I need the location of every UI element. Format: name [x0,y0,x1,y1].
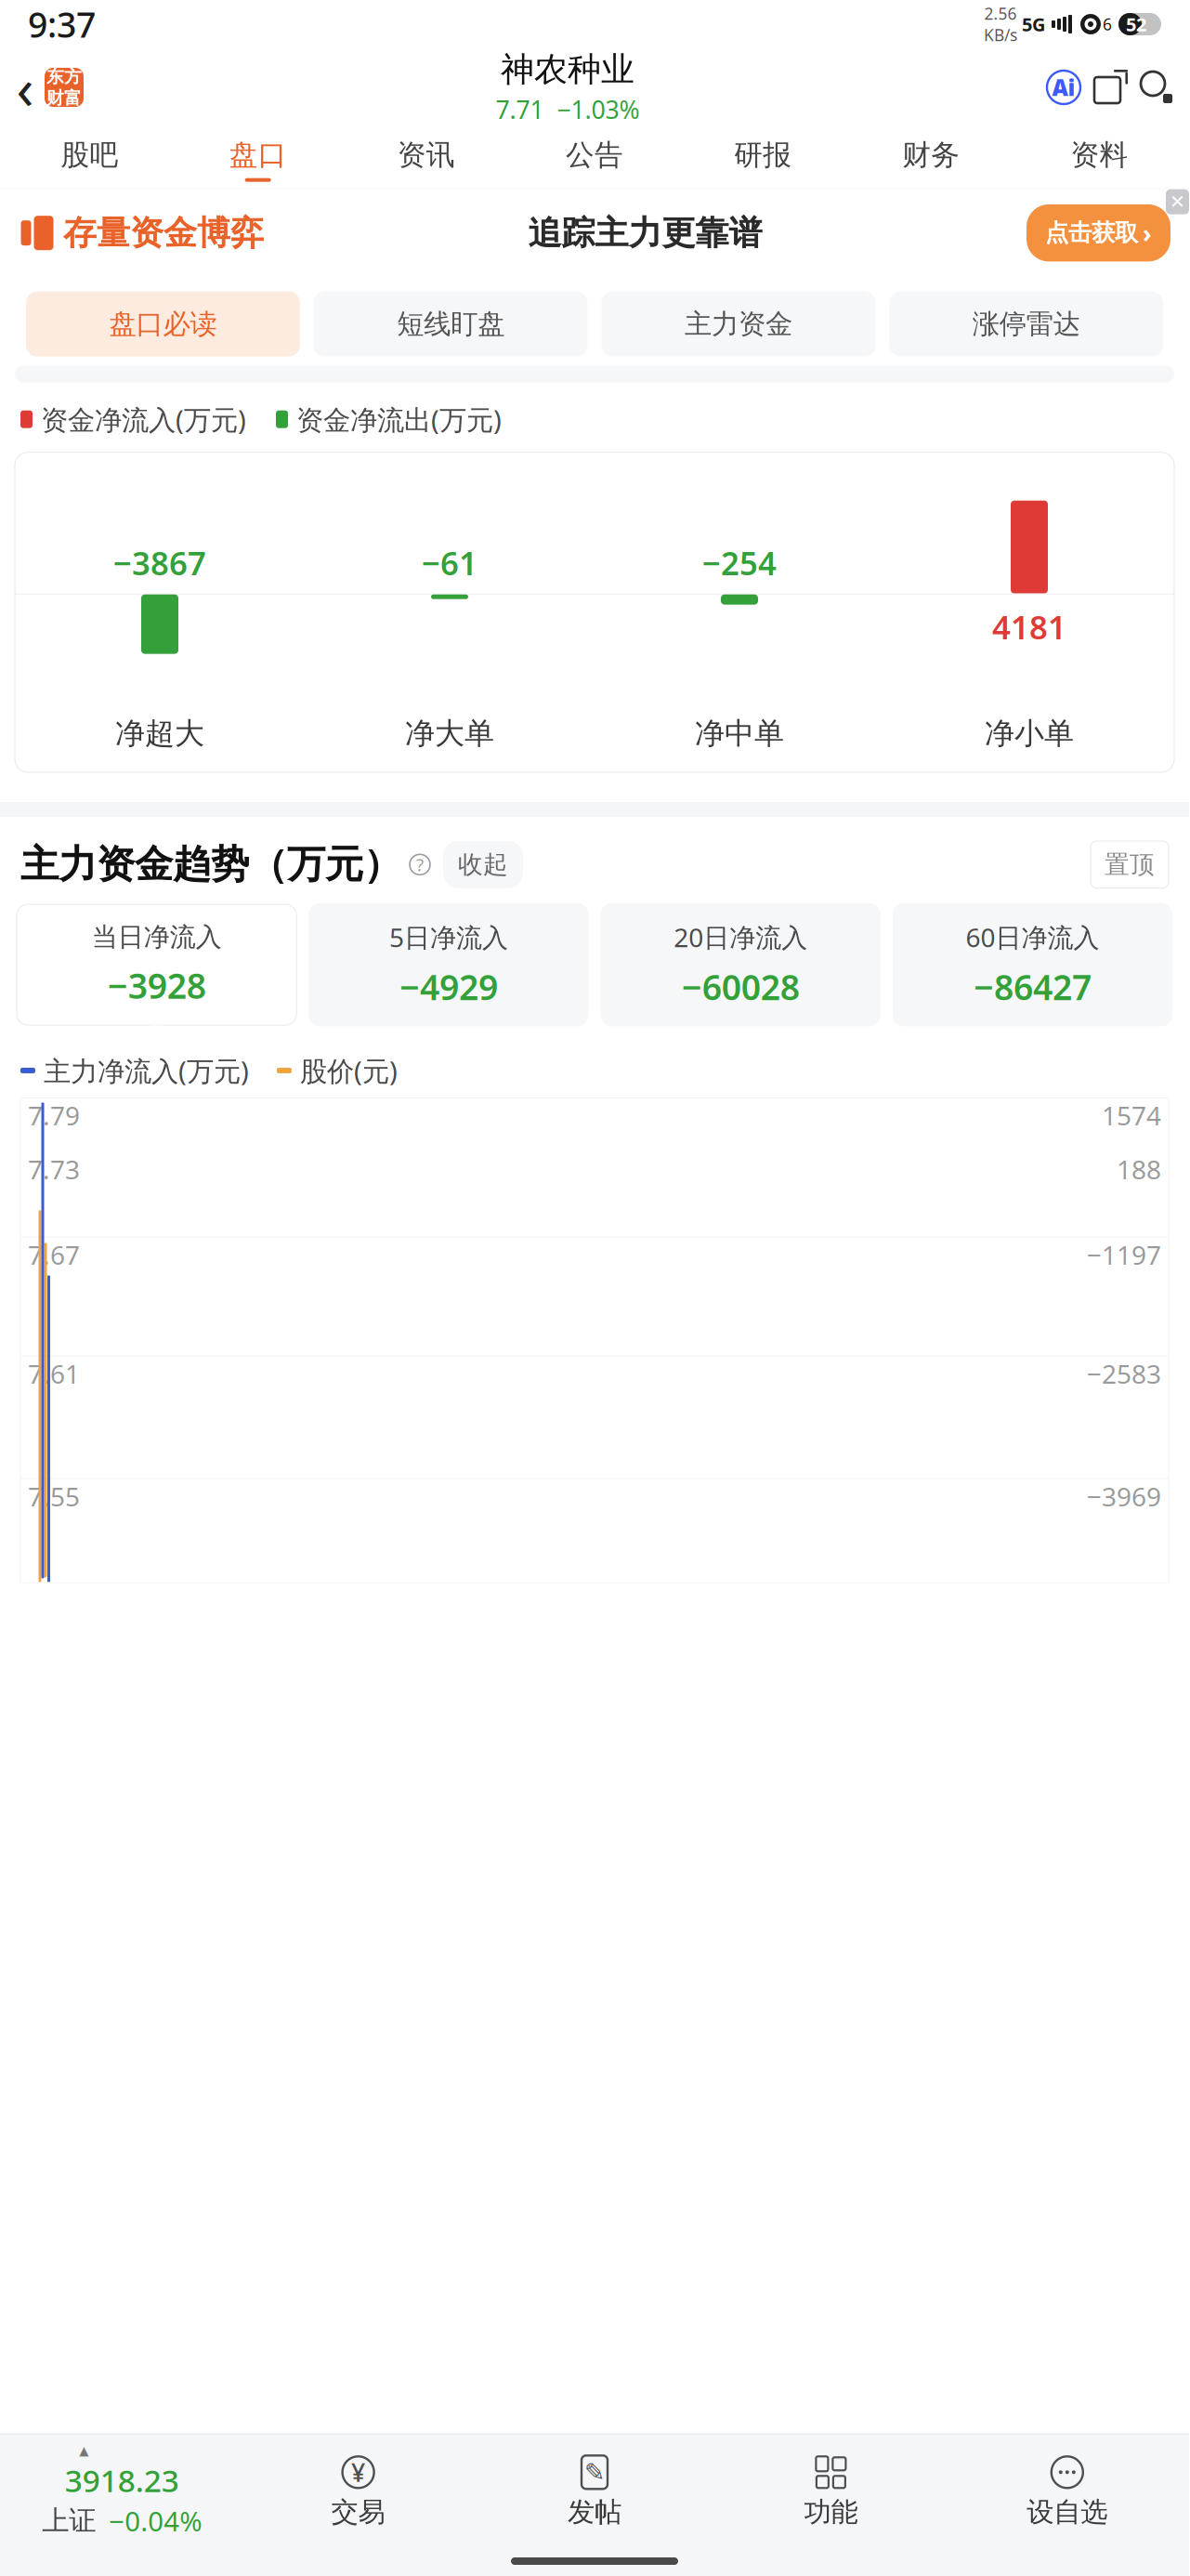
staticText: 2.56 [984,3,1017,24]
button[interactable]: 当日净流入 [17,904,297,1034]
staticText: 资料 [1071,138,1128,173]
staticText: 追踪主力更靠谱 [528,212,762,254]
button[interactable]: 功能 [713,2454,949,2529]
button[interactable]: 关闭广告 [1166,189,1189,214]
staticText: 7.73 [28,1152,80,1186]
staticText: −3867 [113,541,206,584]
staticText: 股吧 [61,138,119,173]
staticText: 股价(元) [300,1052,398,1089]
staticText: 涨停雷达 [972,307,1080,341]
staticText: › [1143,217,1152,249]
button[interactable]: 研报 [679,126,847,189]
button[interactable]: 搜索 [1137,68,1176,107]
staticText: 净中单 [695,715,784,752]
staticText: 公告 [566,138,623,173]
staticText: 资金净流出(万元) [296,401,502,437]
staticText: 9:37 [28,1,96,47]
staticText: −2583 [1087,1356,1161,1391]
staticText: 净大单 [405,715,494,752]
staticText: 7.71 [496,93,544,126]
button[interactable]: 资料 [1015,126,1183,189]
button[interactable]: 60日净流入 [893,903,1172,1036]
staticText: 主力净流入(万元) [44,1052,249,1089]
staticText: 东方 [46,66,82,87]
staticText: 存量资金博弈 [63,212,264,254]
staticText: 6 [1103,13,1112,35]
staticText: −1197 [1087,1237,1161,1272]
staticText: ? [416,853,424,876]
button[interactable]: 涨停雷达 [889,292,1163,357]
staticText: 资讯 [398,138,455,173]
staticText: 盘口 [229,138,287,173]
staticText: 上证 [42,2504,96,2537]
staticText: 5G [1022,12,1045,37]
staticText: 188 [1117,1152,1161,1186]
button[interactable]: ✦ [0,189,1189,277]
staticText: 净小单 [985,715,1074,752]
staticText: 收起 [458,849,508,880]
staticText: −61 [422,541,477,584]
staticText: −0.04% [109,2503,202,2539]
staticText: ✕ [1170,191,1185,212]
staticText: 3918.23 [65,2460,179,2501]
staticText: 资金净流入(万元) [41,401,246,437]
staticText: 功能 [804,2495,858,2529]
staticText: 盘口必读 [109,307,217,341]
staticText: −86427 [973,964,1091,1010]
button[interactable]: 资讯 [342,126,510,189]
button[interactable]: 主力资金 [602,292,875,357]
button[interactable]: 短线盯盘 [314,292,588,357]
staticText: ▼ [443,1023,454,1040]
staticText: 交易 [331,2495,385,2529]
staticText: 财务 [902,138,960,173]
staticText: 4181 [992,606,1066,648]
staticText: −254 [702,541,777,584]
staticText: Ai [1052,73,1075,102]
staticText: −1.03% [557,93,640,126]
staticText: ▲ [79,2444,88,2458]
staticText: 1574 [1102,1098,1161,1132]
button[interactable]: 20日净流入 [601,903,880,1036]
staticText: KB/s [984,24,1017,46]
staticText: 60日净流入 [966,920,1099,954]
staticText: 短线盯盘 [397,307,505,341]
staticText: 52 [1126,12,1146,37]
staticText: 置顶 [1105,849,1155,880]
button[interactable]: 分享 [1091,68,1130,107]
button[interactable]: 置顶 [1091,841,1169,888]
button[interactable]: 财务 [847,126,1015,189]
staticText: 主力资金 [685,307,792,341]
button[interactable]: 盘口必读 [26,292,300,357]
button[interactable]: 收起 [443,841,523,888]
staticText: ▼ [735,1023,746,1040]
button[interactable]: 返回 [0,61,84,113]
button[interactable]: 设自选 [949,2454,1185,2529]
staticText: −3928 [107,962,206,1008]
button[interactable]: AI 助手 [1044,68,1083,107]
button[interactable]: 盘口 [174,126,342,189]
staticText: 神农种业 [501,49,634,90]
staticText: 7.55 [28,1479,80,1513]
button[interactable]: ✎ [476,2454,713,2529]
staticText: 7.61 [28,1356,80,1391]
staticText: 点击获取 [1045,218,1138,247]
staticText: 7.67 [28,1237,80,1272]
staticText: 20日净流入 [674,920,807,954]
staticText: 研报 [734,138,792,173]
staticText: −60028 [681,964,799,1010]
button[interactable]: ▲ [4,2444,240,2539]
button[interactable]: 公告 [510,126,679,189]
staticText: 设自选 [1027,2495,1108,2529]
staticText: 净超大 [115,715,204,752]
staticText: 当日净流入 [92,921,222,953]
staticText: 5日净流入 [389,920,508,954]
button[interactable]: 5日净流入 [309,903,588,1036]
button[interactable]: 股吧 [6,126,174,189]
button[interactable]: ¥ [240,2454,476,2529]
staticText: ✎ [584,2458,605,2486]
staticText: 发帖 [568,2495,621,2529]
staticText: −4929 [399,964,498,1010]
staticText: 7.79 [28,1098,80,1132]
staticText: ‹ [16,50,34,125]
